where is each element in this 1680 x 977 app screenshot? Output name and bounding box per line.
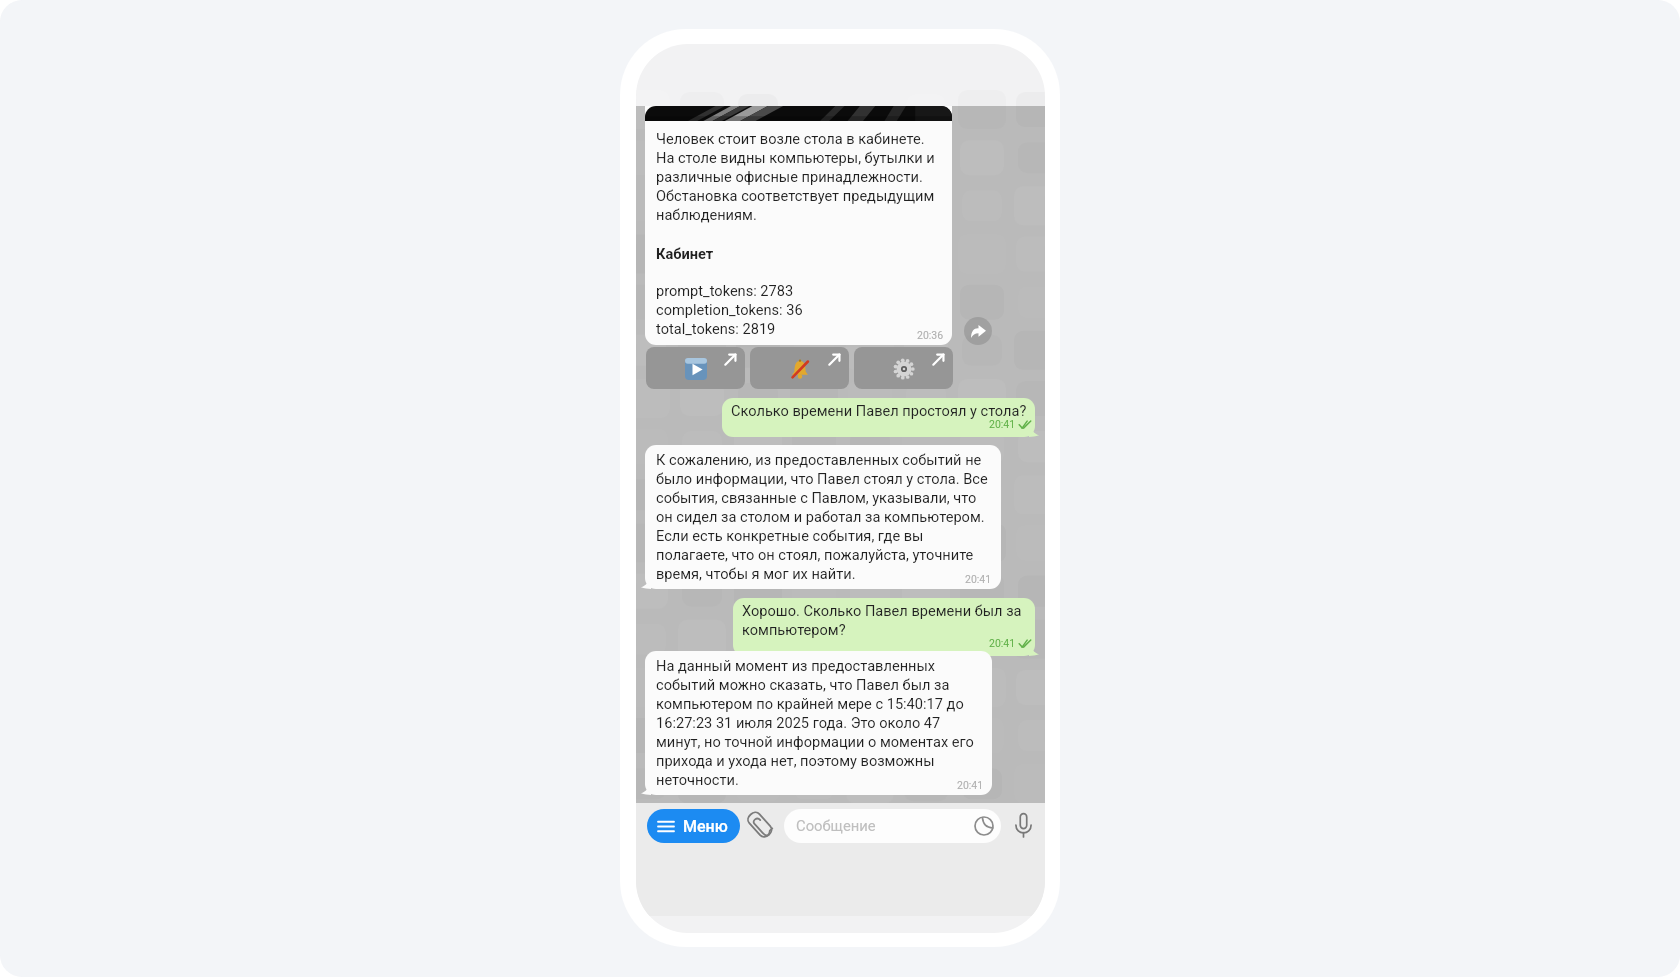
staticText: На данный момент из предоставленных собы…	[656, 656, 974, 789]
button[interactable]: К сожалению, из предоставленных событий …	[645, 445, 1001, 589]
staticText: Сколько времени Павел простоял у стола?	[731, 401, 1027, 420]
staticText: Кабинет	[656, 244, 714, 263]
staticText: 20:41	[957, 779, 984, 791]
button[interactable]: Mute notifications	[750, 347, 849, 389]
button[interactable]: На данный момент из предоставленных собы…	[645, 651, 992, 795]
staticText: К сожалению, из предоставленных событий …	[656, 450, 988, 583]
button[interactable]: Attach file	[749, 812, 772, 839]
button[interactable]: Хорошо. Сколько Павел времени был за ком…	[733, 598, 1035, 656]
button[interactable]: Человек стоит возле стола в кабинете. На…	[645, 106, 952, 345]
button[interactable]: Сколько времени Павел простоял у стола?	[722, 398, 1035, 437]
staticText: 20:41	[989, 418, 1016, 430]
staticText: Хорошо. Сколько Павел времени был за ком…	[742, 601, 1022, 639]
button[interactable]: Сообщение	[784, 809, 1001, 843]
button[interactable]: Settings	[854, 347, 953, 389]
staticText: Человек стоит возле стола в кабинете. На…	[656, 129, 935, 338]
staticText: 20:36	[917, 329, 944, 341]
button[interactable]: Forward	[964, 317, 992, 345]
button[interactable]: Меню	[647, 809, 740, 843]
staticText: 20:41	[965, 573, 992, 585]
staticText: Сообщение	[796, 817, 876, 834]
button[interactable]: Play video	[646, 347, 745, 389]
staticText: 20:41	[989, 637, 1016, 649]
button[interactable]: Record voice message	[1013, 812, 1033, 838]
button[interactable]: Stickers	[974, 816, 994, 836]
staticText: Меню	[683, 817, 728, 836]
